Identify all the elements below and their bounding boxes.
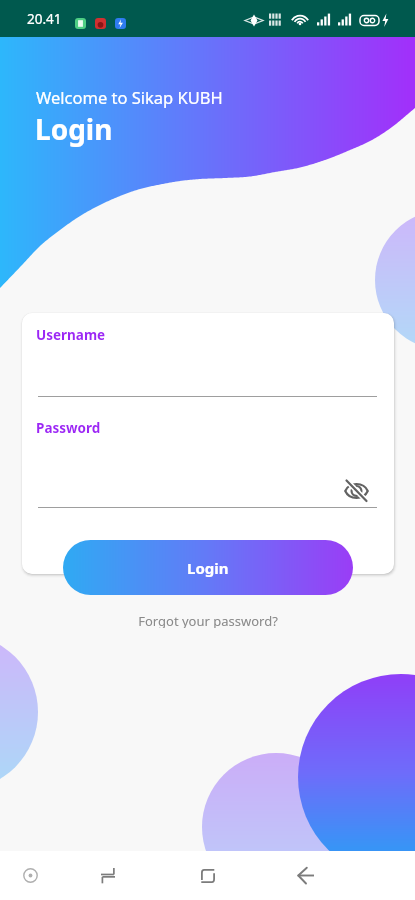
staticText: Login bbox=[187, 558, 229, 578]
staticText: Username bbox=[36, 326, 106, 344]
staticText: 20.41 bbox=[27, 10, 62, 28]
button[interactable]: Split screen bbox=[86, 854, 130, 896]
button[interactable]: Login bbox=[63, 540, 353, 595]
button[interactable]: Recent apps bbox=[186, 856, 230, 895]
button[interactable]: Show password bbox=[341, 475, 371, 505]
button[interactable]: Forgot your password? bbox=[134, 608, 282, 632]
staticText: Login bbox=[35, 110, 113, 148]
staticText: Password bbox=[36, 419, 101, 437]
staticText: Forgot your password? bbox=[138, 612, 278, 628]
staticText: Welcome to Sikap KUBH bbox=[36, 86, 223, 108]
button[interactable]: Assistant bbox=[8, 856, 52, 895]
button[interactable]: Back bbox=[284, 855, 328, 896]
